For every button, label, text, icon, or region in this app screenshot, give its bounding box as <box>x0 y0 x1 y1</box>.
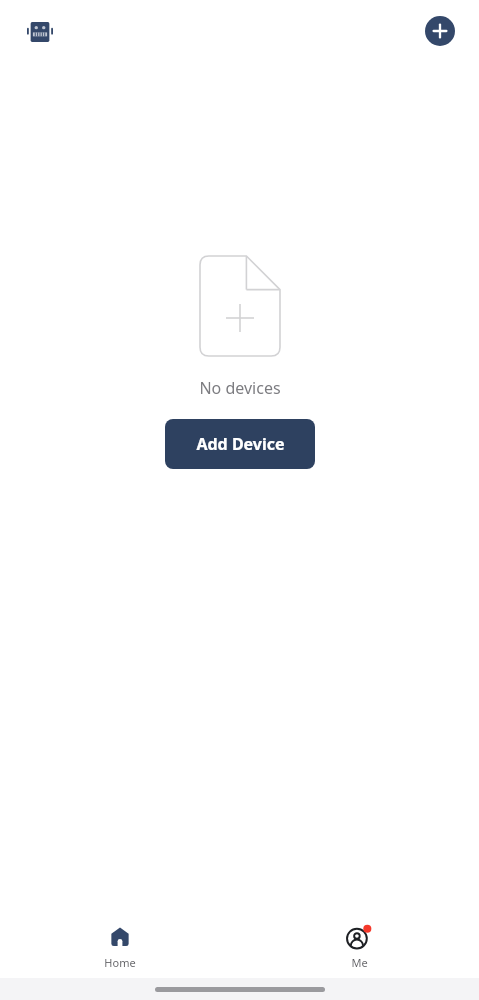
button[interactable]: Home <box>0 916 239 978</box>
button[interactable]: Me <box>239 916 479 978</box>
staticText: No devices <box>199 377 281 399</box>
staticText: Me <box>351 955 368 970</box>
button[interactable]: Add <box>421 12 459 50</box>
staticText: Add Device <box>196 433 285 455</box>
button[interactable]: Robot <box>22 14 58 50</box>
staticText: Home <box>104 955 136 970</box>
button[interactable]: Add Device <box>165 419 315 469</box>
